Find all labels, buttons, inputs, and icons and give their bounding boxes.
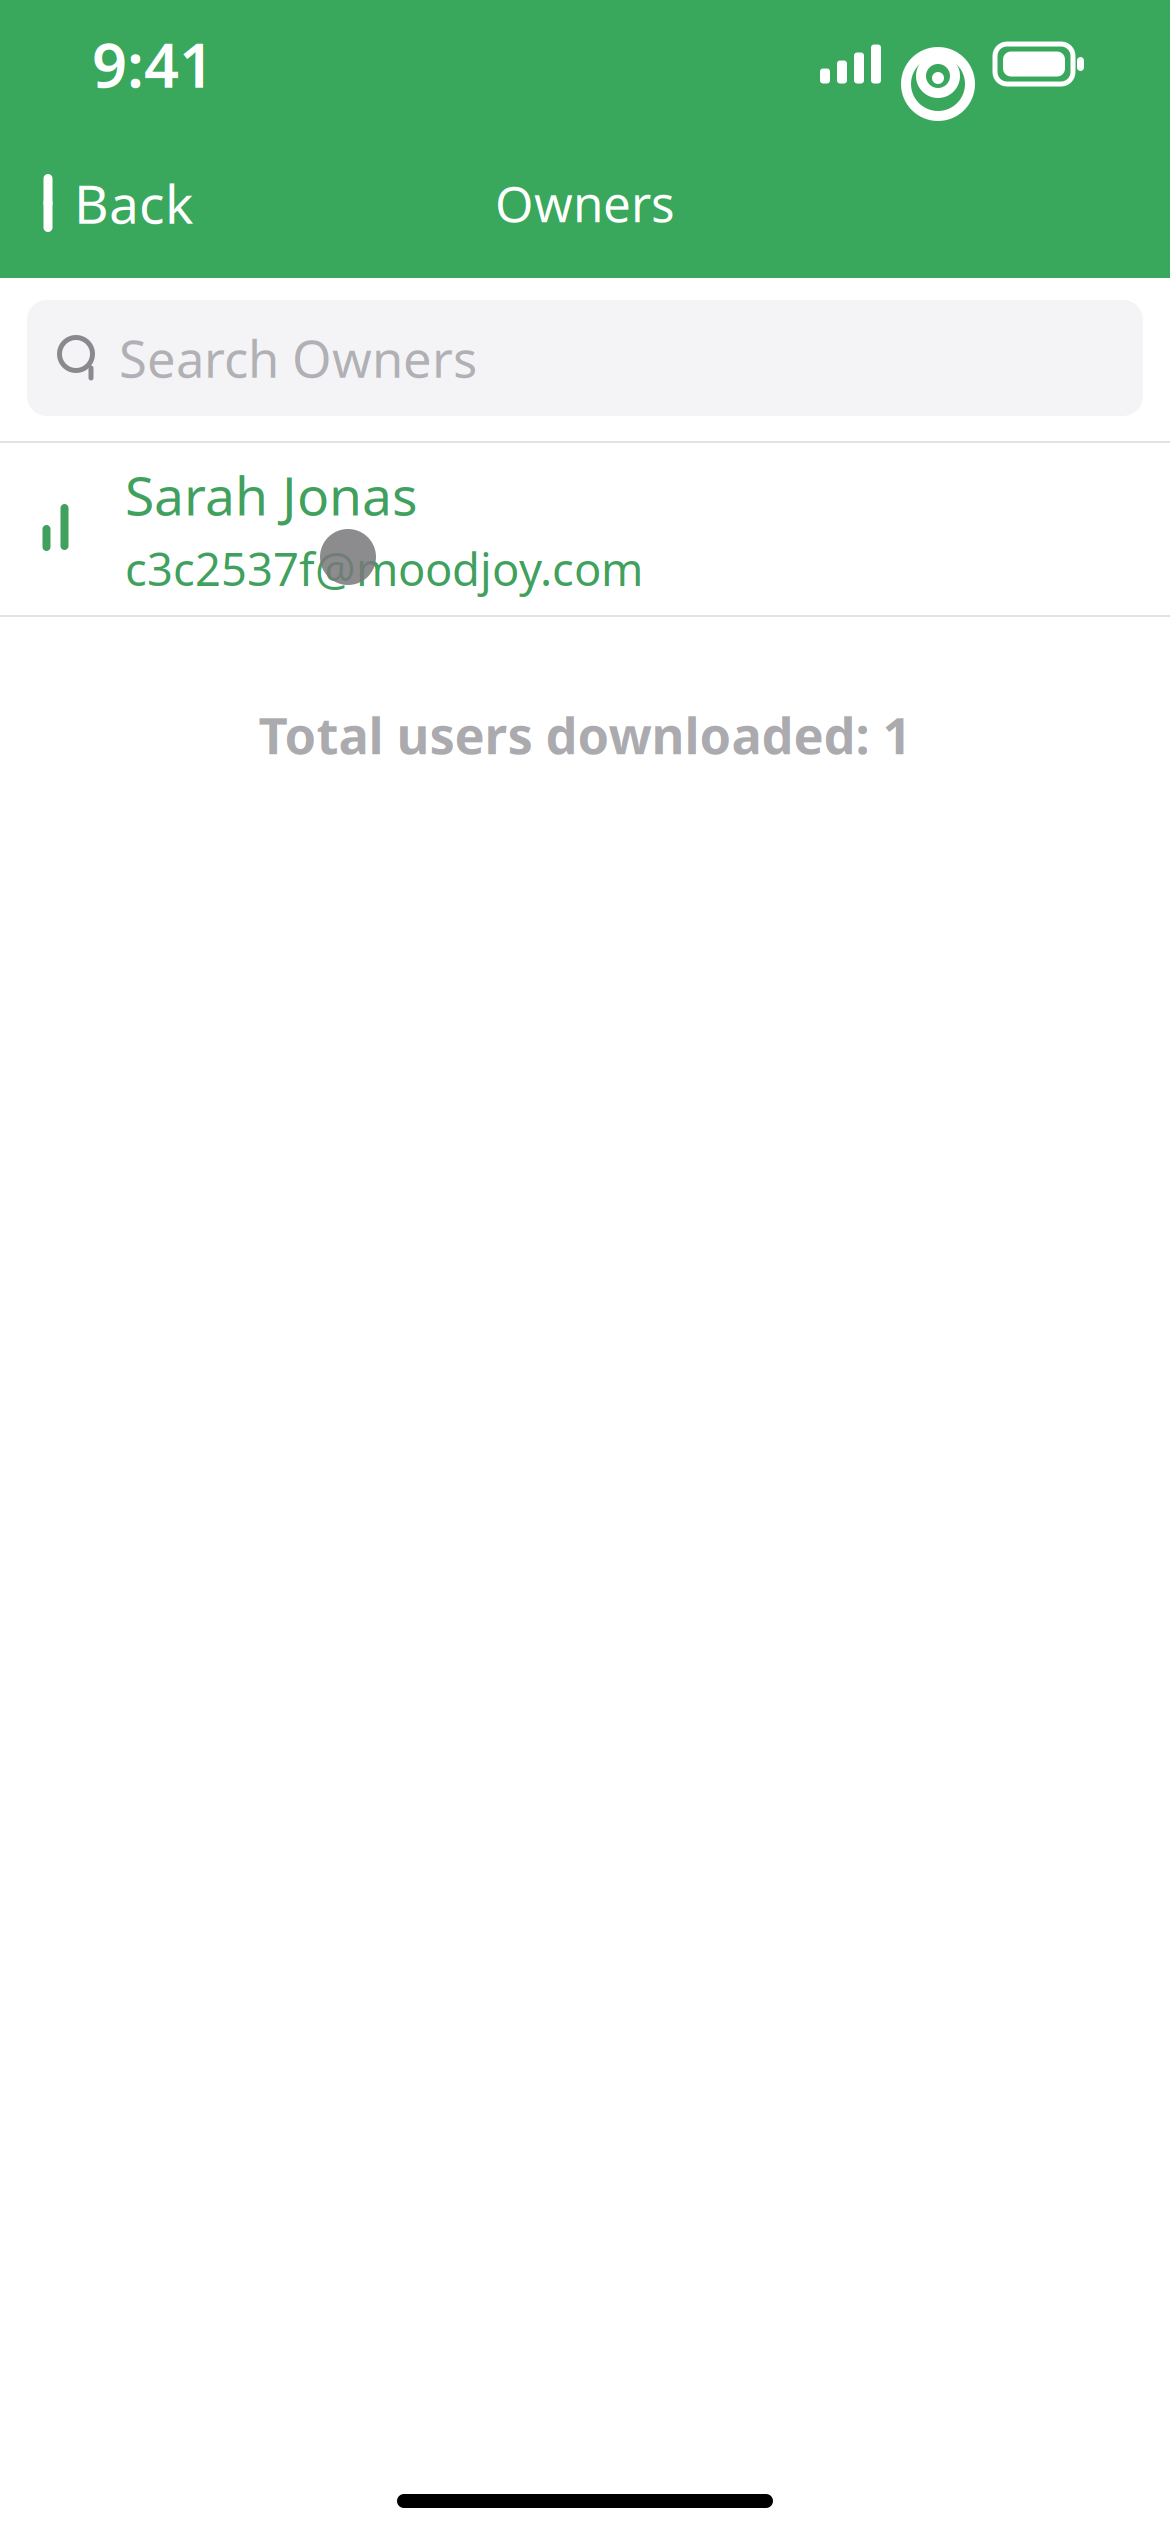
button[interactable]: Back bbox=[0, 148, 217, 258]
staticText: Search Owners bbox=[119, 324, 477, 392]
staticText: Total users downloaded: 1 bbox=[258, 701, 911, 768]
staticText: Sarah Jonas bbox=[125, 459, 418, 530]
staticText: 9:41 bbox=[92, 23, 214, 105]
button[interactable]: Search Owners bbox=[27, 300, 1143, 416]
staticText: Owners bbox=[495, 170, 675, 236]
staticText: c3c2537f@moodjoy.com bbox=[125, 538, 643, 598]
staticText: Back bbox=[74, 168, 193, 238]
button[interactable]: Sarah Jonas bbox=[0, 443, 1170, 615]
